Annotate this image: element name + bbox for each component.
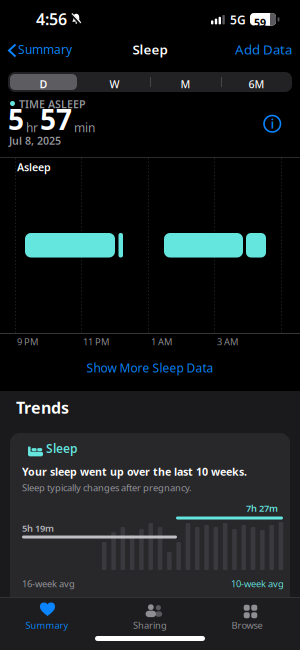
staticText: i (271, 116, 274, 132)
staticText: Trends (16, 397, 69, 418)
staticText: 10-week avg (231, 577, 284, 590)
staticText: 6M (248, 77, 264, 91)
staticText: Sleep (46, 440, 78, 456)
staticText: Sleep (132, 40, 167, 58)
staticText: Asleep (17, 160, 51, 174)
staticText: 5h 19m (22, 522, 54, 534)
staticText: 57 (40, 100, 72, 138)
staticText: 11 PM (83, 335, 109, 348)
staticText: 5 (8, 100, 24, 138)
staticText: Sharing (133, 619, 167, 631)
staticText: Summary (18, 41, 72, 57)
staticText: Summary (25, 619, 68, 631)
staticText: Show More Sleep Data (86, 360, 213, 376)
staticText: 59 (254, 15, 266, 30)
staticText: 7h 27m (246, 502, 278, 514)
staticText: M (180, 77, 190, 91)
staticText: TIME ASLEEP (19, 97, 86, 111)
staticText: Jul 8, 2025 (9, 133, 61, 148)
staticText: Add Data (235, 40, 292, 58)
staticText: D (39, 77, 47, 91)
staticText: 5G (230, 12, 246, 28)
staticText: 16-week avg (22, 577, 75, 590)
staticText: Sleep typically changes after pregnancy. (22, 481, 192, 494)
staticText: W (109, 77, 119, 91)
staticText: hr (26, 120, 38, 136)
staticText: Your sleep went up over the last 10 week… (22, 464, 247, 479)
staticText: min (74, 120, 95, 136)
staticText: 1 AM (151, 335, 172, 348)
staticText: 9 PM (17, 335, 38, 348)
staticText: 3 AM (217, 335, 238, 348)
staticText: Browse (231, 619, 262, 631)
staticText: 4:56 (36, 8, 67, 30)
